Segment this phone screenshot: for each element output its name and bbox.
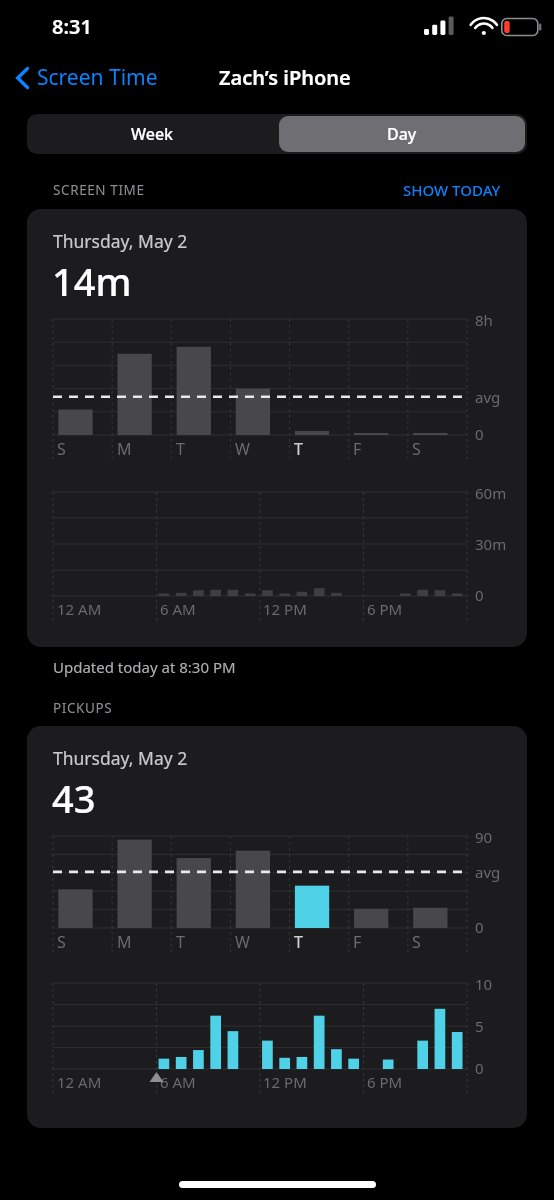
staticText: 30m <box>475 534 507 554</box>
staticText: 14m <box>52 255 132 307</box>
button[interactable]: Thursday, May 2 <box>27 726 527 1128</box>
staticText: Thursday, May 2 <box>53 746 188 770</box>
staticText: 5 <box>475 1016 484 1036</box>
staticText: 6 PM <box>367 1072 403 1092</box>
staticText: 43 <box>52 772 96 824</box>
button[interactable]: Screen Time <box>0 57 166 98</box>
staticText: avg <box>475 862 501 882</box>
staticText: 12 AM <box>57 1072 102 1092</box>
staticText: M <box>117 931 132 953</box>
staticText: Screen Time <box>37 63 158 92</box>
staticText: 8:31 <box>52 13 92 40</box>
staticText: Day <box>387 123 417 145</box>
staticText: T <box>294 438 303 460</box>
staticText: Week <box>131 123 174 145</box>
staticText: avg <box>475 387 501 407</box>
staticText: 12 PM <box>263 599 307 619</box>
staticText: 6 AM <box>160 599 196 619</box>
staticText: W <box>235 931 250 953</box>
staticText: 0 <box>475 585 484 605</box>
button[interactable]: SHOW TODAY <box>403 180 501 200</box>
staticText: S <box>57 438 66 460</box>
staticText: S <box>412 931 421 953</box>
staticText: 6 AM <box>160 1072 196 1092</box>
staticText: Updated today at 8:30 PM <box>53 657 236 677</box>
staticText: 0 <box>475 424 484 444</box>
button[interactable]: Day <box>279 116 525 152</box>
staticText: 0 <box>475 917 484 937</box>
button[interactable]: Thursday, May 2 <box>27 209 527 647</box>
staticText: SCREEN TIME <box>53 181 145 199</box>
staticText: T <box>176 931 185 953</box>
staticText: T <box>294 931 303 953</box>
staticText: PICKUPS <box>53 699 113 717</box>
button[interactable]: Week <box>27 114 277 154</box>
staticText: Thursday, May 2 <box>53 229 188 253</box>
staticText: 12 PM <box>263 1072 307 1092</box>
staticText: SHOW TODAY <box>403 180 501 200</box>
staticText: 8h <box>475 310 493 330</box>
staticText: Zach’s iPhone <box>219 64 351 91</box>
staticText: 12 AM <box>57 599 102 619</box>
staticText: 0 <box>475 1058 484 1078</box>
staticText: 10 <box>475 974 493 994</box>
staticText: W <box>235 438 250 460</box>
staticText: 6 PM <box>367 599 403 619</box>
staticText: T <box>176 438 185 460</box>
staticText: S <box>412 438 421 460</box>
staticText: F <box>353 438 362 460</box>
staticText: S <box>57 931 66 953</box>
staticText: 60m <box>475 483 507 503</box>
staticText: M <box>117 438 132 460</box>
staticText: F <box>353 931 362 953</box>
staticText: 90 <box>475 827 493 847</box>
